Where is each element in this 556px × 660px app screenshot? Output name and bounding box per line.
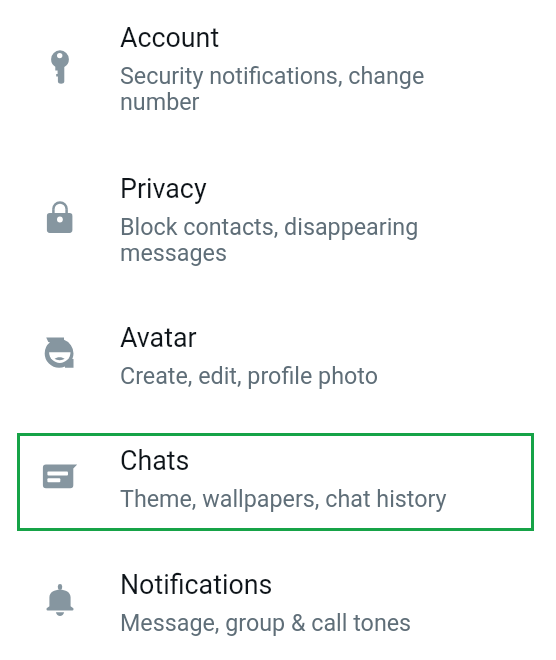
other: Avatar [40,334,80,374]
staticText: Security notifications, change number [120,62,425,116]
staticText: Theme, wallpapers, chat history [120,485,447,512]
staticText: Create, edit, profile photo [120,362,378,389]
staticText: Notifications [120,569,273,600]
other: Privacy [40,197,80,237]
other: Account [40,47,80,87]
button[interactable]: Avatar [0,310,556,406]
button[interactable]: Account [0,10,556,106]
button[interactable]: Chats [17,433,534,531]
staticText: Message, group & call tones [120,609,412,636]
staticText: Chats [120,445,190,476]
staticText: Block contacts, disappearing messages [120,213,419,267]
other: Chats [40,456,80,496]
other: Notifications [40,580,80,620]
button[interactable]: Privacy [0,161,556,257]
staticText: Privacy [120,173,207,204]
staticText: Avatar [120,322,197,353]
staticText: Account [120,22,220,53]
button[interactable]: Notifications [0,557,556,653]
